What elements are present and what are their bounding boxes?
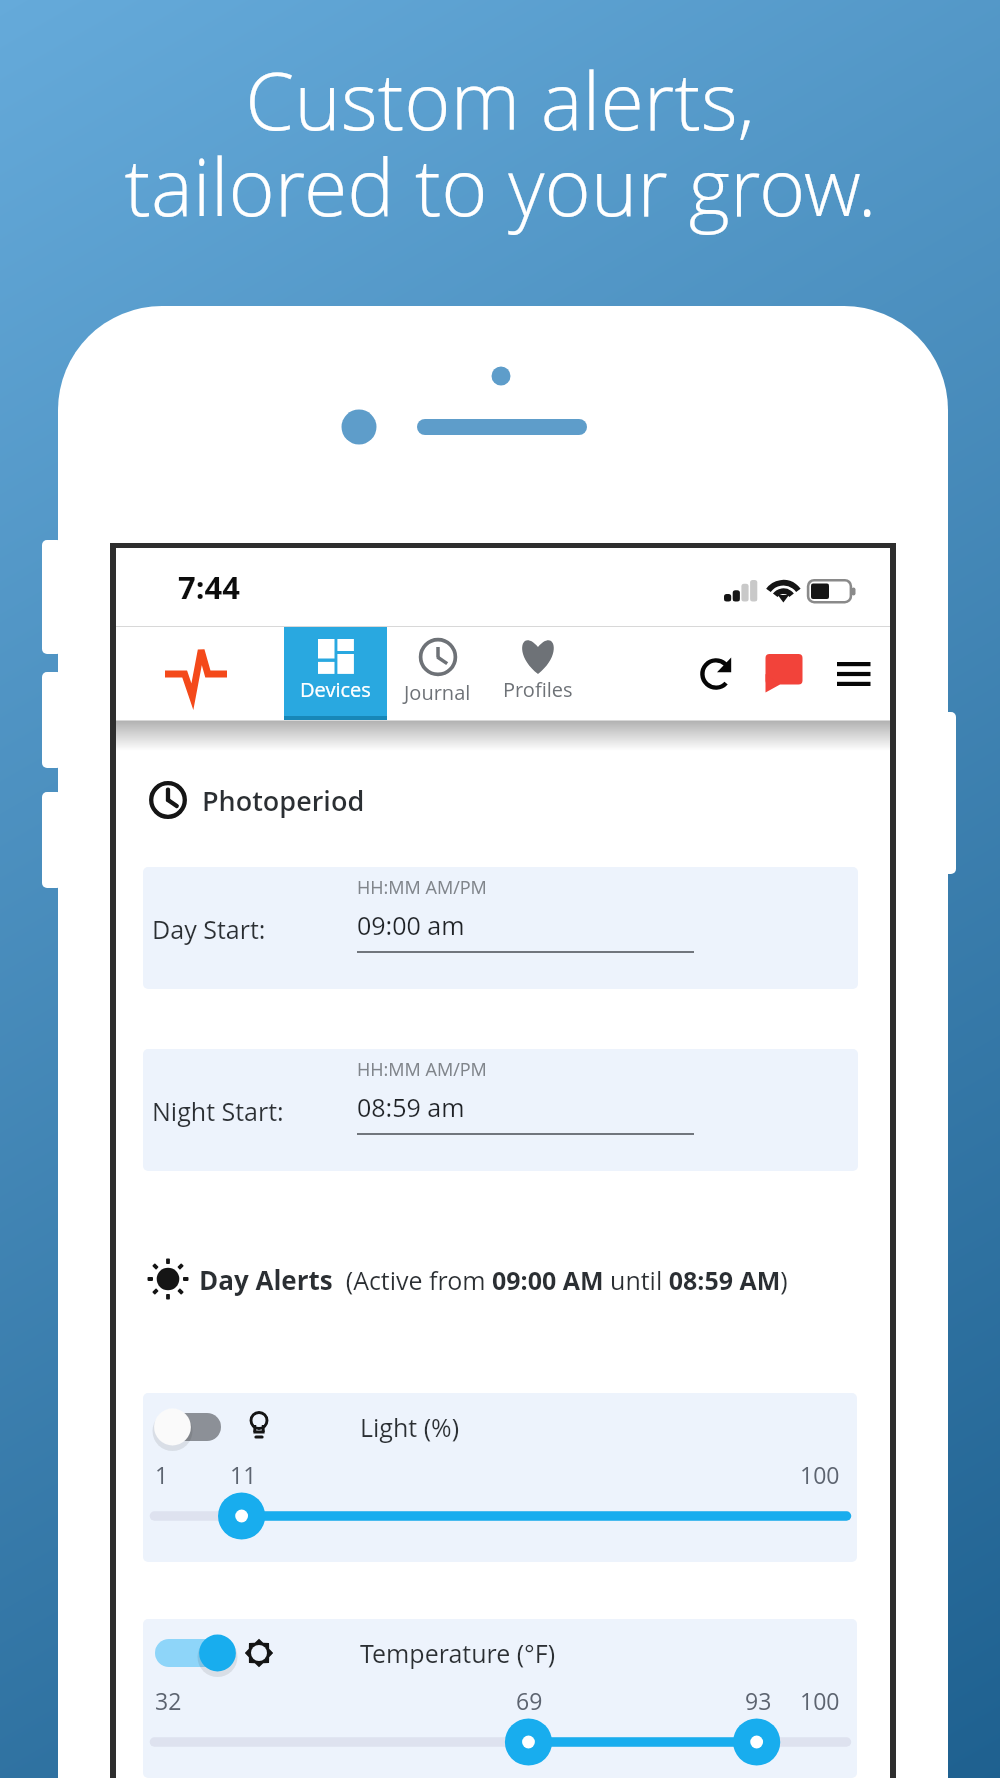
staticText: 100 — [800, 1459, 840, 1490]
staticText: 7:44 — [178, 566, 240, 608]
button[interactable]: Profiles — [487, 627, 588, 721]
staticText: Journal — [404, 679, 471, 706]
button[interactable]: Menu — [818, 627, 890, 721]
staticText: Custom alerts, — [245, 46, 755, 154]
staticText: Light (%) — [360, 1410, 460, 1444]
staticText: Photoperiod — [202, 782, 365, 819]
staticText: HH:MM AM/PM — [357, 1057, 487, 1082]
button[interactable]: Journal — [387, 627, 487, 721]
staticText: Temperature (°F) — [360, 1636, 556, 1670]
staticText: Day Start: — [152, 912, 266, 946]
staticText: 08:59 am — [357, 1090, 465, 1124]
button[interactable]: Messages — [750, 627, 818, 721]
staticText: 100 — [800, 1685, 840, 1716]
staticText: 32 — [155, 1685, 182, 1716]
staticText: 09:00 am — [357, 908, 465, 942]
staticText: 1 — [155, 1459, 169, 1490]
staticText: 69 — [516, 1685, 543, 1716]
staticText: Day Alerts (Active from 09:00 AM until 0… — [199, 1262, 788, 1297]
staticText: 11 — [230, 1459, 257, 1490]
button[interactable]: Refresh — [682, 627, 750, 721]
button[interactable]: Night Start: — [143, 1049, 858, 1171]
staticText: HH:MM AM/PM — [357, 875, 487, 900]
button[interactable]: Toggle Light (%) — [154, 1402, 222, 1452]
staticText: Devices — [300, 676, 371, 703]
button[interactable]: Day Start: — [143, 867, 858, 989]
button[interactable]: Devices — [284, 627, 387, 721]
staticText: 93 — [745, 1685, 772, 1716]
button[interactable]: App logo — [116, 627, 284, 721]
staticText: Night Start: — [152, 1094, 284, 1128]
button[interactable]: Toggle Temperature (°F) — [154, 1628, 222, 1678]
staticText: Profiles — [503, 676, 573, 703]
staticText: tailored to your grow. — [124, 132, 877, 240]
